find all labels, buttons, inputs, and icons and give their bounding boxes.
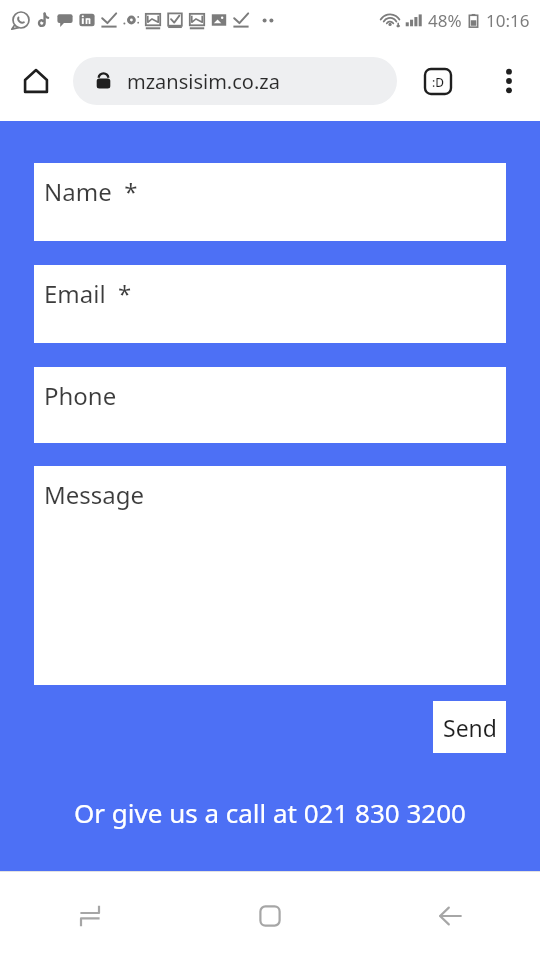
button[interactable]: mzansisim.co.za — [73, 57, 397, 105]
staticText: Message — [44, 478, 145, 511]
button[interactable]: More options — [486, 58, 532, 104]
staticText: 48% — [428, 9, 462, 32]
staticText: 10:16 — [486, 9, 530, 32]
button[interactable]: Recent apps — [0, 872, 180, 960]
staticText: Phone — [44, 379, 117, 412]
staticText: Name * — [44, 175, 138, 208]
staticText: Send — [443, 712, 497, 743]
button[interactable]: Phone — [34, 367, 506, 443]
button[interactable]: Back — [360, 872, 540, 960]
button[interactable]: Tabs — [415, 58, 461, 104]
staticText: Email * — [44, 277, 132, 310]
staticText: :D — [432, 74, 445, 90]
button[interactable]: Email * — [34, 265, 506, 343]
staticText: mzansisim.co.za — [127, 68, 280, 95]
button[interactable]: Home — [180, 872, 360, 960]
button[interactable]: Home — [13, 58, 59, 104]
button[interactable]: Message — [34, 466, 506, 685]
staticText: Or give us a call at 021 830 3200 — [74, 795, 466, 830]
button[interactable]: Send — [433, 701, 506, 753]
button[interactable]: Name * — [34, 163, 506, 241]
